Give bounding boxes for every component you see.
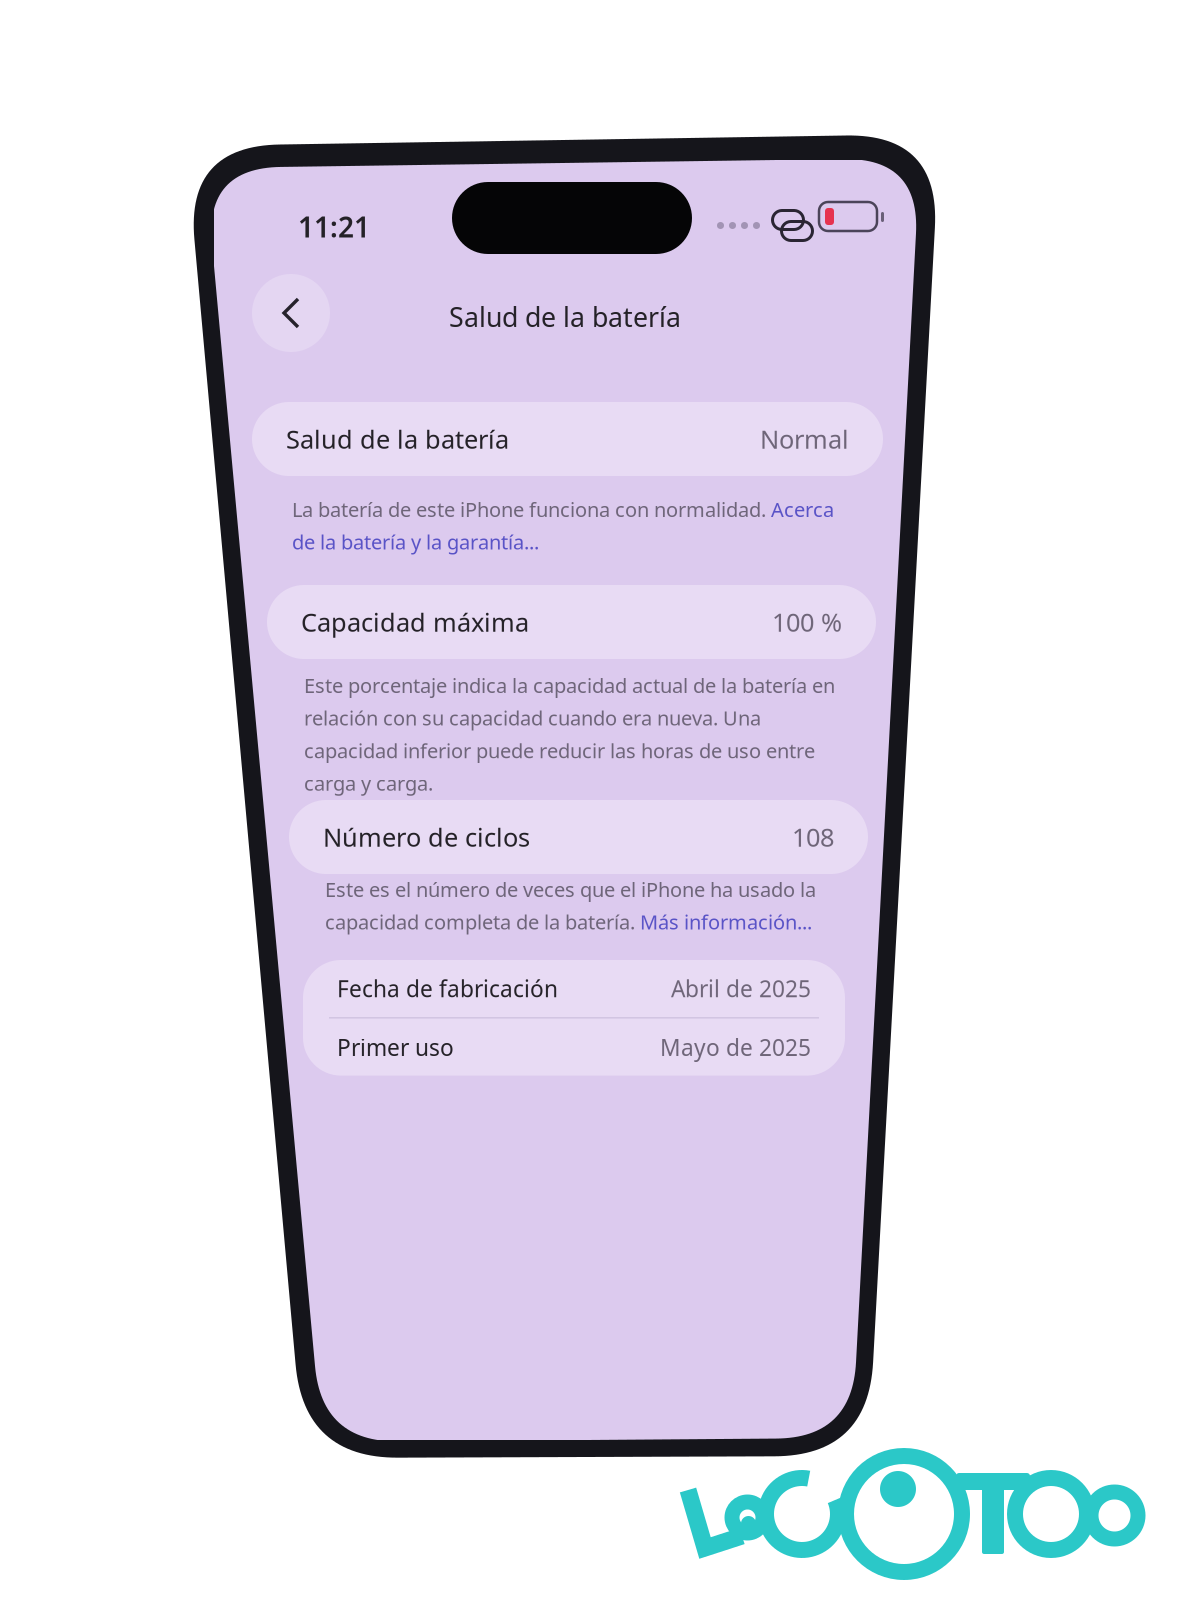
staticText: 108: [792, 820, 834, 854]
staticText: Número de ciclos: [323, 820, 530, 854]
staticText: carga y carga.: [304, 770, 433, 796]
staticText: Salud de la batería: [286, 422, 509, 456]
staticText: Este es el número de veces que el iPhone…: [325, 876, 816, 903]
staticText: Abril de 2025: [671, 973, 811, 1003]
staticText: Salud de la batería: [449, 299, 681, 334]
staticText: capacidad completa de la batería.: [325, 909, 640, 935]
staticText: La batería de este iPhone funciona con n…: [292, 496, 771, 523]
staticText: 100 %: [772, 605, 842, 639]
staticText: relación con su capacidad cuando era nue…: [304, 705, 761, 731]
staticText: Fecha de fabricación: [337, 973, 558, 1003]
button[interactable]: Número de ciclos: [289, 800, 868, 874]
staticText: Capacidad máxima: [301, 605, 529, 639]
button[interactable]: Salud de la batería: [252, 402, 883, 476]
button[interactable]: Back: [252, 274, 330, 352]
staticText: Acerca: [771, 496, 834, 523]
staticText: Más información...: [640, 909, 812, 935]
button[interactable]: Capacidad máxima: [267, 585, 876, 659]
staticText: capacidad inferior puede reducir las hor…: [304, 737, 815, 764]
button[interactable]: Fecha de fabricación: [303, 960, 845, 1017]
staticText: Este porcentaje indica la capacidad actu…: [304, 672, 835, 699]
staticText: Primer uso: [337, 1032, 454, 1062]
staticText: Mayo de 2025: [660, 1032, 811, 1062]
staticText: 11:21: [298, 208, 370, 245]
staticText: Normal: [760, 422, 849, 456]
staticText: de la batería y la garantía...: [292, 529, 539, 555]
button[interactable]: Primer uso: [303, 1019, 845, 1076]
